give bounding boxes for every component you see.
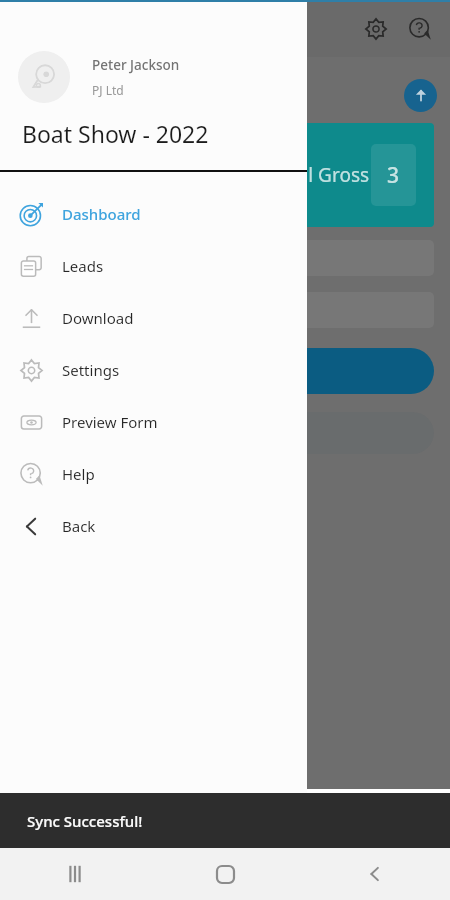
button[interactable]: Upload	[404, 79, 437, 112]
button[interactable]	[16, 240, 434, 276]
staticText: Boat Show - 2022	[22, 118, 209, 149]
button[interactable]: Home	[150, 848, 300, 900]
button[interactable]: Total Gross	[16, 123, 434, 227]
staticText: Dashboard	[62, 204, 141, 224]
button[interactable]: Back	[0, 500, 307, 552]
staticText: Sync Successful!	[27, 811, 143, 831]
staticText: Back	[62, 516, 96, 536]
button[interactable]: Recent apps	[0, 848, 150, 900]
button[interactable]: Back	[300, 848, 450, 900]
staticText: Total Gross	[270, 162, 370, 188]
button[interactable]	[16, 348, 434, 394]
button[interactable]: Help	[398, 7, 442, 51]
button[interactable]: Download	[0, 292, 307, 344]
button[interactable]: Peter Jackson	[0, 46, 307, 108]
staticText: 3	[387, 161, 400, 190]
staticText: Peter Jackson	[92, 56, 180, 74]
button[interactable]: Sync Successful!	[0, 793, 450, 848]
button[interactable]: Settings	[354, 7, 398, 51]
button[interactable]: Dashboard	[0, 188, 307, 240]
staticText: Settings	[62, 360, 120, 380]
staticText: PJ Ltd	[92, 82, 124, 98]
button[interactable]: Settings	[0, 344, 307, 396]
staticText: Leads	[62, 256, 104, 276]
button[interactable]: Help	[0, 448, 307, 500]
staticText: Download	[62, 308, 134, 328]
button[interactable]	[16, 412, 434, 454]
button[interactable]	[16, 292, 434, 328]
staticText: Preview Form	[62, 412, 158, 432]
staticText: Help	[62, 464, 95, 484]
button[interactable]: Leads	[0, 240, 307, 292]
button[interactable]: Preview Form	[0, 396, 307, 448]
